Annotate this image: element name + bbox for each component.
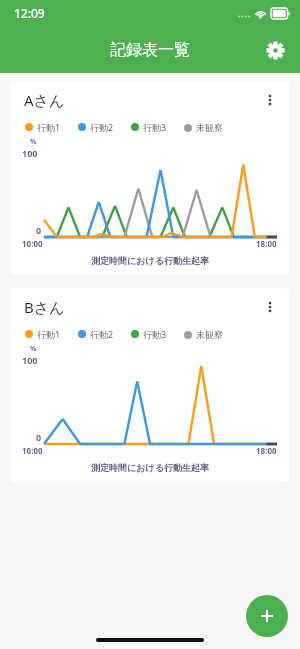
staticText: %	[30, 344, 37, 354]
button[interactable]: Add record	[246, 595, 288, 637]
staticText: 10:00	[22, 445, 43, 456]
staticText: 10:00	[22, 238, 43, 249]
staticText: 18:00	[256, 238, 277, 249]
staticText: Bさん	[24, 297, 65, 317]
staticText: 18:00	[256, 445, 277, 456]
staticText: 行動1	[37, 328, 61, 340]
staticText: 行動3	[143, 121, 167, 133]
staticText: 記録表一覧	[110, 40, 190, 60]
button[interactable]: Aさん	[11, 81, 289, 275]
button[interactable]: Bさん	[11, 288, 289, 482]
staticText: 0	[36, 224, 42, 236]
button[interactable]: More options	[255, 292, 285, 322]
staticText: 測定時間における行動生起率	[11, 462, 289, 473]
button[interactable]: Settings	[258, 33, 292, 67]
staticText: 測定時間における行動生起率	[11, 255, 289, 266]
staticText: 12:09	[14, 5, 45, 21]
staticText: 行動3	[143, 328, 167, 340]
staticText: 100	[22, 354, 38, 366]
button[interactable]: More options	[255, 85, 285, 115]
staticText: 行動2	[90, 121, 114, 133]
staticText: 行動1	[37, 121, 61, 133]
staticText: %	[30, 137, 37, 147]
staticText: Aさん	[24, 90, 65, 110]
staticText: 未観察	[196, 122, 223, 133]
staticText: 0	[36, 431, 42, 443]
staticText: 100	[22, 147, 38, 159]
staticText: 行動2	[90, 328, 114, 340]
staticText: 未観察	[196, 329, 223, 340]
